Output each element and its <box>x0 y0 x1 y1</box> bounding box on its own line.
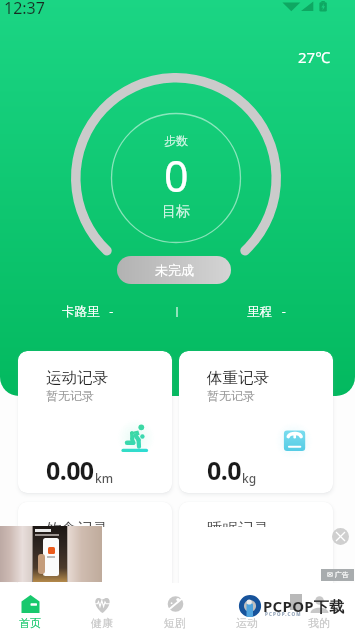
button[interactable]: 运动 <box>211 583 283 634</box>
button[interactable]: 未完成 <box>117 256 231 284</box>
staticText: 运动 <box>236 616 258 630</box>
staticText: 卡路里 - <box>62 303 114 320</box>
button[interactable]: 体重记录 <box>179 351 333 493</box>
staticText: 首页 <box>19 616 41 630</box>
button[interactable]: Close <box>332 528 349 545</box>
button[interactable]: 运动记录 <box>18 351 172 493</box>
staticText: 0 <box>164 146 189 205</box>
staticText: km <box>95 470 114 486</box>
staticText: PCPOP下载 <box>263 596 345 616</box>
staticText: 健康 <box>91 616 113 630</box>
staticText: 0.0 <box>207 453 241 487</box>
staticText: 27℃ <box>298 47 331 67</box>
staticText: kg <box>242 470 257 486</box>
staticText: 里程 - <box>247 303 286 320</box>
staticText: 睡眠记录 <box>207 519 269 527</box>
button[interactable]: 睡眠记录 <box>179 502 333 634</box>
button[interactable]: 健康 <box>66 583 138 634</box>
staticText: 0.00 <box>46 453 94 487</box>
staticText: 饮食记录 <box>46 519 108 527</box>
staticText: 未完成 <box>155 262 194 278</box>
button[interactable]: Advertisement video <box>0 526 102 582</box>
staticText: PCPOP.COM <box>265 611 302 617</box>
staticText: 体重记录 <box>207 368 269 388</box>
button[interactable]: 首页 <box>0 583 66 634</box>
button[interactable]: 我的 <box>283 583 355 634</box>
staticText: 暂无记录 <box>207 388 255 403</box>
button[interactable]: 短剧 <box>139 583 211 634</box>
staticText: 步数 <box>164 133 188 148</box>
staticText: 目标 <box>162 203 190 221</box>
staticText: 12:37 <box>4 0 45 19</box>
staticText: 运动记录 <box>46 368 108 388</box>
staticText: ✉ 广告 <box>327 570 349 580</box>
staticText: 暂无记录 <box>46 388 94 403</box>
staticText: 我的 <box>308 616 330 630</box>
button[interactable]: 饮食记录 <box>18 502 172 634</box>
staticText: 短剧 <box>164 616 186 630</box>
